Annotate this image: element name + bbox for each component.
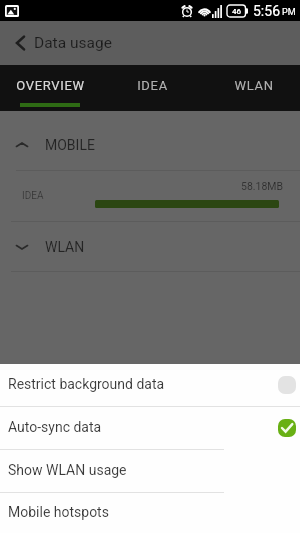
staticText: Auto-sync data (8, 419, 102, 435)
staticText: 5:56 (253, 3, 280, 19)
button[interactable]: Mobile hotspots (0, 493, 300, 533)
staticText: 46 (232, 7, 242, 16)
button[interactable]: WLAN (0, 222, 300, 271)
button[interactable]: WLAN (203, 65, 300, 111)
staticText: IDEA (137, 78, 168, 93)
staticText: IDEA (22, 190, 44, 202)
staticText: WLAN (234, 78, 274, 93)
button[interactable]: MOBILE (0, 111, 300, 170)
button[interactable]: Show WLAN usage (0, 450, 300, 492)
button[interactable]: Back (0, 21, 34, 65)
staticText: MOBILE (45, 137, 95, 153)
staticText: Data usage (34, 34, 112, 52)
button[interactable]: IDEA (101, 65, 203, 111)
staticText: OVERVIEW (16, 78, 85, 93)
staticText: Show WLAN usage (8, 462, 127, 478)
staticText: Mobile hotspots (8, 504, 109, 520)
button[interactable]: Auto-sync data (0, 407, 300, 449)
staticText: Restrict background data (8, 376, 165, 392)
staticText: 58.18MB (241, 180, 284, 192)
button[interactable]: Restrict background data (0, 364, 300, 406)
staticText: PM (282, 7, 296, 18)
button[interactable]: OVERVIEW (0, 65, 101, 111)
staticText: WLAN (45, 239, 85, 255)
